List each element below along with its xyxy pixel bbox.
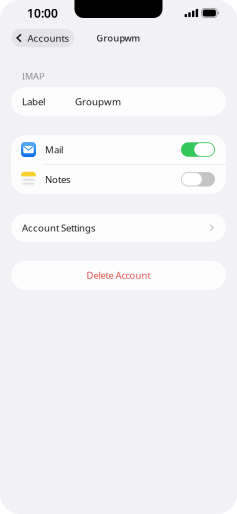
button[interactable]: Notes	[11, 165, 226, 194]
button[interactable]: Delete Account	[0, 261, 237, 290]
staticText: Notes	[45, 173, 71, 186]
staticText: Delete Account	[86, 269, 150, 281]
button[interactable]: Accounts	[11, 29, 74, 47]
button[interactable]: Mail	[11, 135, 226, 164]
staticText: Groupwm	[96, 32, 140, 44]
staticText: Label	[22, 95, 46, 108]
staticText: Groupwm	[75, 95, 121, 108]
staticText: Mail	[45, 143, 63, 156]
staticText: Account Settings	[22, 221, 96, 234]
staticText: IMAP	[22, 70, 44, 82]
staticText: Accounts	[27, 32, 69, 44]
staticText: 10:00	[27, 5, 58, 21]
button[interactable]: Account Settings	[0, 214, 237, 242]
